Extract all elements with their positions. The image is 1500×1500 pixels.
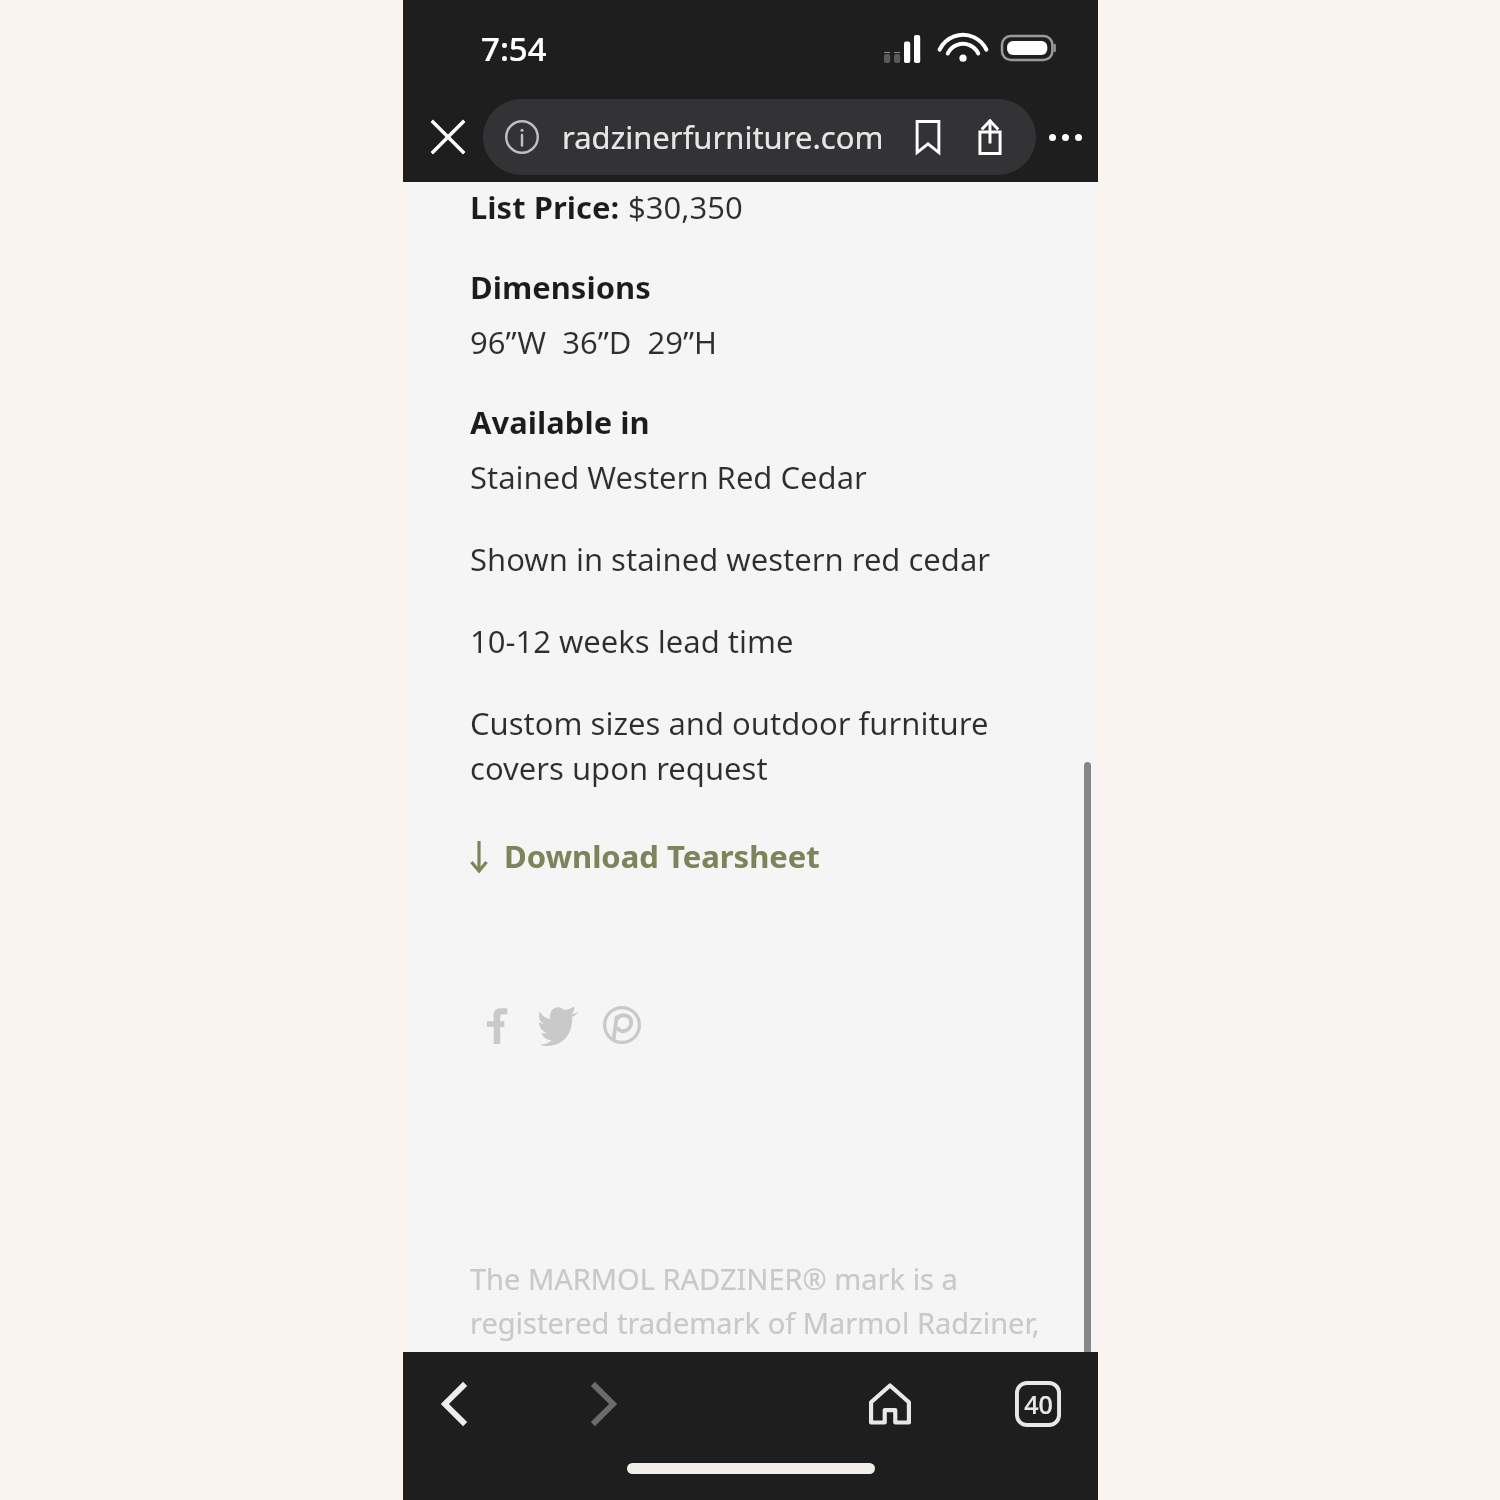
- button[interactable]: Share on Pinterest: [596, 999, 648, 1051]
- staticText: 7:54: [481, 26, 547, 71]
- staticText: Available in: [470, 401, 650, 443]
- button[interactable]: Back: [417, 1366, 493, 1442]
- staticText: 96”W 36”D 29”H: [470, 321, 718, 363]
- button[interactable]: Share on Twitter: [533, 999, 585, 1051]
- staticText: 10-12 weeks lead time: [470, 620, 794, 662]
- button[interactable]: Home: [852, 1366, 928, 1442]
- button[interactable]: Tabs, 40 open: [1000, 1366, 1076, 1442]
- staticText: The MARMOL RADZINER® mark is a registere…: [470, 1259, 1058, 1352]
- button[interactable]: Bookmark: [904, 113, 952, 161]
- staticText: Download Tearsheet: [504, 835, 820, 877]
- button[interactable]: Forward: [565, 1366, 641, 1442]
- staticText: Shown in stained western red cedar: [470, 538, 991, 580]
- staticText: Dimensions: [470, 266, 651, 308]
- staticText: $30,350: [628, 186, 743, 228]
- button[interactable]: More options: [1036, 108, 1094, 166]
- button[interactable]: Share: [966, 113, 1014, 161]
- staticText: List Price:: [470, 186, 628, 228]
- staticText: Stained Western Red Cedar: [470, 456, 867, 498]
- button[interactable]: radzinerfurniture.com: [483, 99, 1036, 175]
- staticText: Custom sizes and outdoor furniture cover…: [470, 702, 1058, 789]
- button[interactable]: Share on Facebook: [470, 999, 522, 1051]
- button[interactable]: Close: [417, 106, 479, 168]
- staticText: radzinerfurniture.com: [562, 116, 884, 158]
- button[interactable]: Download Tearsheet: [470, 831, 820, 881]
- staticText: 40: [1024, 1387, 1053, 1421]
